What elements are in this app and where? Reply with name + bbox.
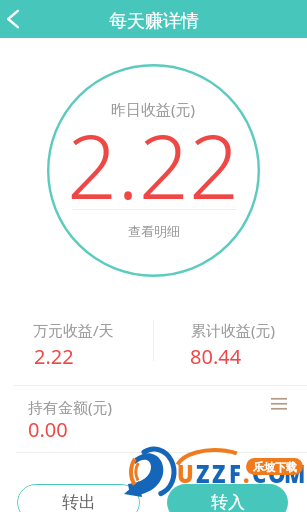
button[interactable]: [0, 385, 307, 453]
staticText: 转入: [211, 492, 245, 512]
staticText: C: [252, 457, 267, 490]
staticText: F: [229, 457, 241, 490]
staticText: 查看明细: [128, 223, 180, 239]
staticText: 累计收益(元): [191, 320, 276, 340]
staticText: 0.00: [28, 416, 68, 443]
staticText: 2.22: [67, 105, 240, 225]
staticText: 每天赚详情: [109, 10, 199, 33]
staticText: 万元收益/天: [33, 320, 114, 340]
staticText: M: [284, 457, 306, 490]
staticText: 转出: [62, 492, 96, 512]
button[interactable]: Records: [266, 390, 292, 416]
staticText: 80.44: [190, 343, 242, 370]
staticText: Z: [212, 457, 226, 490]
button[interactable]: 转出: [17, 484, 140, 512]
staticText: O: [268, 457, 286, 490]
button[interactable]: Back: [0, 0, 38, 38]
button[interactable]: 转入: [167, 484, 288, 512]
button[interactable]: 查看明细: [128, 223, 180, 239]
staticText: U: [177, 457, 194, 490]
staticText: 2.22: [34, 343, 74, 370]
staticText: .: [243, 457, 249, 490]
staticText: 昨日收益(元): [111, 99, 196, 119]
staticText: 乐坡下载: [253, 460, 297, 474]
staticText: Z: [196, 457, 210, 490]
staticText: 持有金额(元): [28, 397, 113, 417]
